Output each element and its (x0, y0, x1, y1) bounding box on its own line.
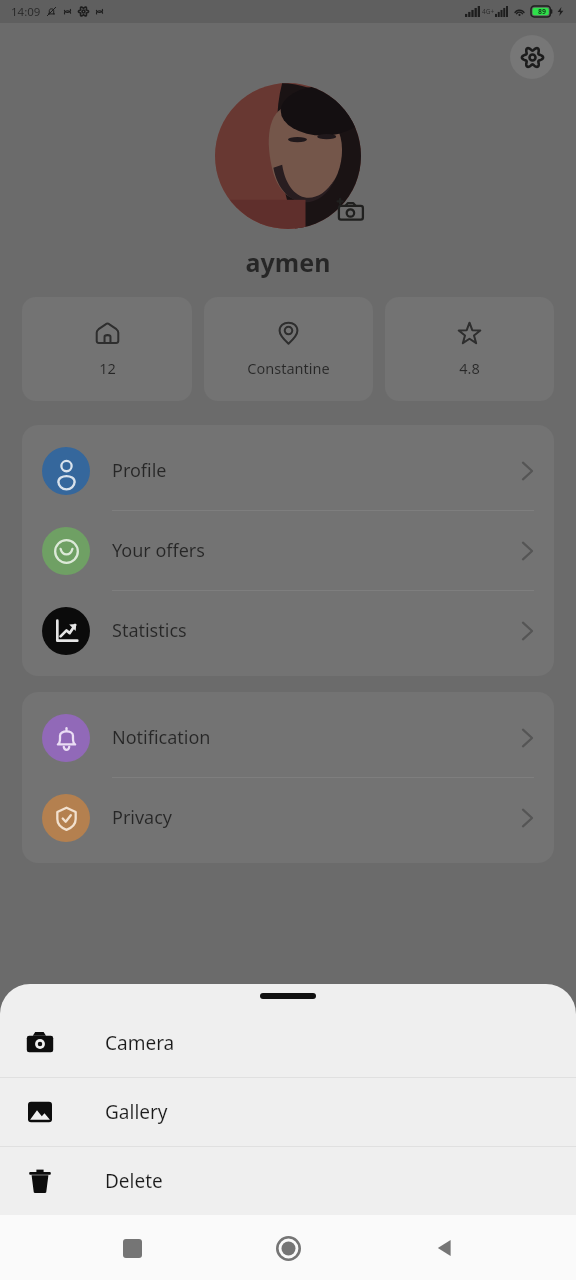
staticText: Your offers (112, 538, 521, 563)
button[interactable]: Change photo (333, 193, 367, 227)
staticText: Delete (105, 1168, 163, 1194)
button[interactable]: Gallery (0, 1078, 576, 1146)
button[interactable]: Profile (22, 431, 554, 510)
button[interactable]: Back (420, 1224, 468, 1272)
button[interactable]: Settings (510, 35, 554, 79)
staticText: 12 (99, 358, 116, 378)
button[interactable]: Constantine (204, 297, 373, 401)
button[interactable]: Recent apps (108, 1224, 156, 1272)
staticText: Statistics (112, 618, 521, 643)
button[interactable]: Home (264, 1224, 312, 1272)
staticText: 4G+ (482, 7, 495, 16)
button[interactable]: 4.8 (385, 297, 554, 401)
staticText: Camera (105, 1030, 175, 1056)
staticText: Notification (112, 725, 521, 750)
button[interactable]: Notification (22, 698, 554, 777)
button[interactable]: 12 (22, 297, 192, 401)
button[interactable]: Statistics (22, 591, 554, 670)
staticText: Constantine (247, 358, 330, 378)
staticText: 14:09 (11, 4, 41, 20)
button[interactable]: Your offers (22, 511, 554, 590)
staticText: 4.8 (459, 358, 480, 378)
staticText: Gallery (105, 1099, 168, 1125)
staticText: Profile (112, 458, 521, 483)
button[interactable]: Camera (0, 1009, 576, 1077)
staticText: 89 (538, 7, 547, 17)
staticText: aymen (0, 245, 576, 279)
staticText: Privacy (112, 805, 521, 830)
button[interactable]: Privacy (22, 778, 554, 857)
button[interactable]: Delete (0, 1147, 576, 1215)
